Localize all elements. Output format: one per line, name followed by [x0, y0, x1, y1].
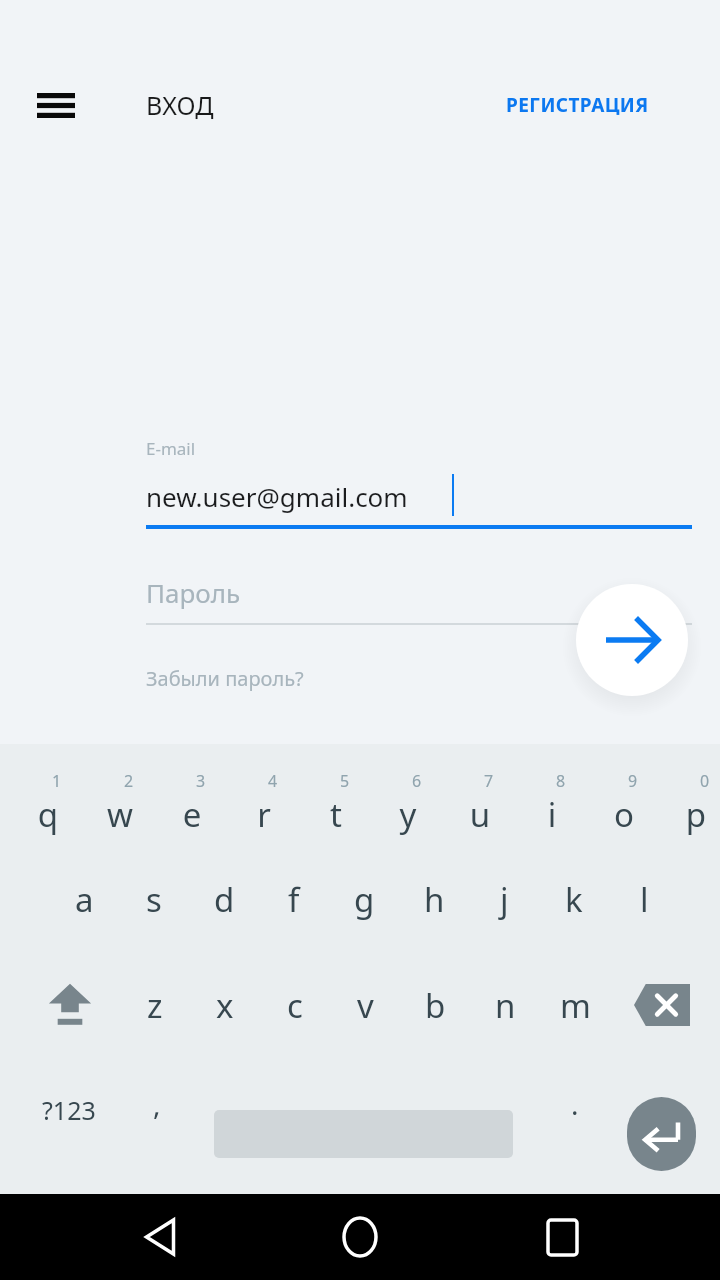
- button[interactable]: m: [540, 955, 610, 1055]
- button[interactable]: 5: [300, 744, 372, 844]
- button[interactable]: Backspace: [612, 955, 712, 1055]
- staticText: l: [640, 877, 649, 922]
- staticText: y: [372, 792, 444, 837]
- button[interactable]: Забыли пароль?: [146, 654, 304, 702]
- button[interactable]: f: [259, 849, 329, 949]
- button[interactable]: Shift: [18, 955, 122, 1055]
- staticText: 8: [556, 770, 566, 792]
- staticText: o: [588, 792, 660, 837]
- staticText: z: [147, 983, 163, 1028]
- button[interactable]: Recents: [522, 1194, 602, 1280]
- button[interactable]: 4: [228, 744, 300, 844]
- button[interactable]: c: [260, 955, 330, 1055]
- staticText: 4: [268, 770, 278, 792]
- button[interactable]: ?123: [14, 1060, 124, 1160]
- staticText: c: [287, 983, 303, 1028]
- button[interactable]: n: [470, 955, 540, 1055]
- button[interactable]: 7: [444, 744, 516, 844]
- staticText: E-mail: [146, 437, 196, 460]
- staticText: s: [146, 877, 162, 922]
- staticText: r: [228, 792, 300, 837]
- staticText: u: [444, 792, 516, 837]
- button[interactable]: k: [539, 849, 609, 949]
- staticText: n: [495, 983, 516, 1028]
- button[interactable]: 1: [12, 744, 84, 844]
- button[interactable]: b: [400, 955, 470, 1055]
- button[interactable]: l: [609, 849, 679, 949]
- button[interactable]: 9: [588, 744, 660, 844]
- staticText: 3: [196, 770, 206, 792]
- staticText: g: [354, 877, 375, 922]
- button[interactable]: d: [189, 849, 259, 949]
- staticText: 6: [412, 770, 422, 792]
- button[interactable]: x: [190, 955, 260, 1055]
- staticText: k: [565, 877, 583, 922]
- button[interactable]: 2: [84, 744, 156, 844]
- staticText: 1: [52, 770, 62, 792]
- button[interactable]: Enter: [627, 1097, 696, 1171]
- staticText: i: [516, 792, 588, 837]
- staticText: q: [12, 792, 84, 837]
- button[interactable]: Menu: [22, 78, 90, 132]
- button[interactable]: v: [330, 955, 400, 1055]
- staticText: new.user@gmail.com: [146, 479, 408, 514]
- staticText: j: [500, 877, 509, 922]
- button[interactable]: РЕГИСТРАЦИЯ: [506, 76, 649, 134]
- staticText: 0: [700, 770, 710, 792]
- button[interactable]: 8: [516, 744, 588, 844]
- staticText: ВХОД: [146, 88, 214, 122]
- button[interactable]: a: [49, 849, 119, 949]
- button[interactable]: h: [399, 849, 469, 949]
- button[interactable]: g: [329, 849, 399, 949]
- staticText: b: [425, 983, 446, 1028]
- staticText: ?123: [42, 1093, 96, 1127]
- button[interactable]: .: [540, 1060, 610, 1160]
- button[interactable]: z: [120, 955, 190, 1055]
- button[interactable]: Back: [120, 1194, 200, 1280]
- button[interactable]: Пароль: [146, 562, 566, 622]
- button[interactable]: Home: [320, 1194, 400, 1280]
- staticText: d: [214, 877, 235, 922]
- staticText: 5: [340, 770, 350, 792]
- button[interactable]: 0: [660, 744, 720, 844]
- button[interactable]: new.user@gmail.com: [146, 468, 692, 524]
- staticText: f: [288, 877, 300, 922]
- staticText: m: [560, 983, 591, 1028]
- staticText: .: [571, 1085, 579, 1123]
- staticText: p: [660, 792, 720, 837]
- staticText: РЕГИСТРАЦИЯ: [506, 92, 649, 118]
- button[interactable]: 6: [372, 744, 444, 844]
- staticText: x: [216, 983, 234, 1028]
- button[interactable]: s: [119, 849, 189, 949]
- staticText: 7: [484, 770, 494, 792]
- staticText: Забыли пароль?: [146, 665, 304, 692]
- staticText: 9: [628, 770, 638, 792]
- button[interactable]: 3: [156, 744, 228, 844]
- staticText: Пароль: [146, 575, 241, 610]
- staticText: v: [357, 983, 374, 1028]
- button[interactable]: Continue: [576, 584, 688, 696]
- staticText: ,: [153, 1085, 161, 1123]
- staticText: h: [424, 877, 445, 922]
- button[interactable]: ,: [122, 1060, 192, 1160]
- staticText: a: [75, 877, 94, 922]
- staticText: 2: [124, 770, 134, 792]
- button[interactable]: j: [469, 849, 539, 949]
- staticText: t: [300, 792, 372, 837]
- staticText: w: [84, 792, 156, 837]
- staticText: e: [156, 792, 228, 837]
